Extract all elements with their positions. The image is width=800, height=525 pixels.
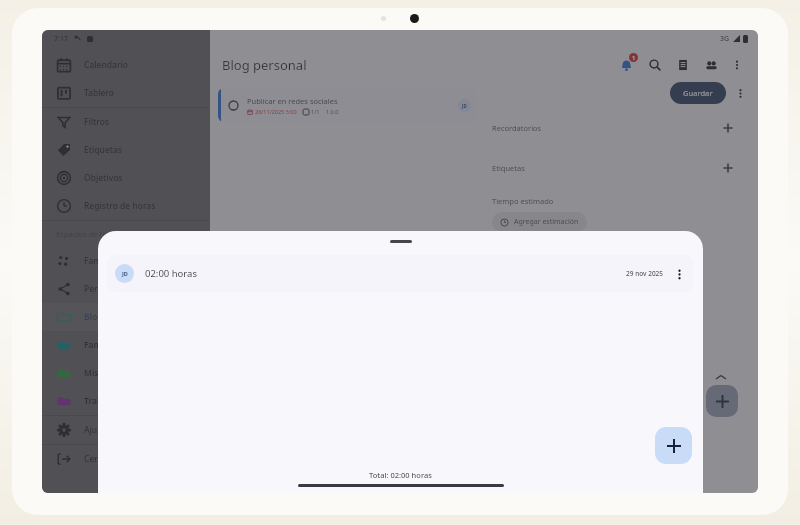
button[interactable]: Familia	[42, 331, 210, 359]
staticText: Personal	[84, 283, 120, 295]
button[interactable]: Guardar	[670, 82, 726, 104]
staticText: Total: 02:00 horas	[369, 470, 432, 480]
staticText: Agregar estimación	[514, 217, 579, 227]
button[interactable]: Miembros	[702, 56, 720, 74]
button[interactable]: Publicar en redes sociales	[218, 88, 477, 122]
staticText: 3G	[720, 34, 730, 44]
staticText: Recordatorios	[492, 123, 542, 133]
button[interactable]: Ajustes	[42, 416, 210, 444]
button[interactable]: Etiquetas	[478, 158, 748, 178]
staticText: 26/11/2025 5:00	[255, 108, 297, 115]
button[interactable]: Más	[732, 85, 748, 101]
staticText: Etiquetas	[84, 144, 123, 156]
staticText: 1.0.0	[326, 108, 339, 115]
button[interactable]: Opciones de registro	[672, 267, 686, 281]
staticText: Blog personal	[222, 56, 307, 74]
staticText: Tiempo estimado	[492, 196, 554, 206]
staticText: Guardar	[683, 88, 713, 98]
button[interactable]: Mis tareas	[42, 359, 210, 387]
staticText: Familia	[84, 255, 114, 267]
button[interactable]: Calendario	[42, 51, 210, 79]
button[interactable]: Familia	[42, 247, 210, 275]
staticText: Familia	[84, 339, 114, 351]
button[interactable]: Filtros	[42, 108, 210, 136]
staticText: JD	[462, 103, 467, 109]
button[interactable]: Buscar	[646, 56, 664, 74]
button[interactable]: Agregar estimación	[492, 212, 587, 232]
staticText: Espacios de trabajo	[56, 229, 126, 239]
button[interactable]: Trabajo	[42, 387, 210, 415]
staticText: Tablero	[84, 87, 115, 99]
staticText: Blog personal	[84, 311, 142, 323]
staticText: Filtros	[84, 116, 110, 128]
button[interactable]: Más opciones	[728, 56, 746, 74]
button[interactable]: Documento	[674, 56, 692, 74]
button[interactable]: Registro de horas	[42, 192, 210, 220]
staticText: 7:17	[54, 34, 68, 44]
staticText: Trabajo	[84, 395, 115, 407]
staticText: 29 nov 2025	[626, 269, 664, 278]
button[interactable]: Personal	[42, 275, 210, 303]
staticText: Objetivos	[84, 172, 123, 184]
button[interactable]: Agregar registro de horas	[655, 427, 692, 464]
staticText: Calendario	[84, 59, 128, 71]
button[interactable]: Cerrar sesión	[42, 445, 210, 473]
staticText: Cerrar sesión	[84, 453, 138, 465]
staticText: Registro de horas	[84, 200, 156, 212]
button[interactable]: Recordatorios	[478, 118, 748, 138]
button[interactable]: Notificaciones	[616, 55, 636, 75]
staticText: 1/1	[311, 108, 320, 115]
staticText: Publicar en redes sociales	[247, 96, 338, 106]
staticText: Etiquetas	[492, 163, 525, 173]
staticText: 1	[632, 54, 636, 61]
button[interactable]: Agregar	[706, 385, 738, 417]
button[interactable]: Etiquetas	[42, 136, 210, 164]
staticText: Mis tareas	[84, 367, 127, 379]
button[interactable]: Blog personal	[42, 303, 210, 331]
button[interactable]: JD	[107, 255, 694, 292]
staticText: JD	[122, 270, 128, 277]
staticText: Ajustes	[84, 424, 114, 436]
staticText: 02:00 horas	[145, 267, 197, 280]
button[interactable]: Objetivos	[42, 164, 210, 192]
button[interactable]: Tablero	[42, 79, 210, 107]
